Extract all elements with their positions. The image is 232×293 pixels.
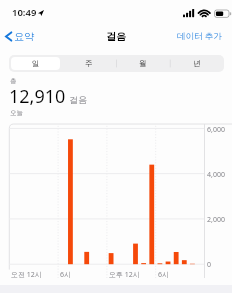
staticText: 4,000: [207, 170, 225, 180]
staticText: 오후 12시: [109, 270, 140, 280]
staticText: 오늘: [10, 109, 23, 117]
staticText: 걸음: [69, 94, 87, 105]
staticText: 2,000: [207, 215, 225, 225]
staticText: 0: [207, 260, 212, 270]
button[interactable]: 주: [62, 55, 116, 72]
staticText: 오전 12시: [11, 270, 42, 280]
staticText: 6,000: [207, 125, 225, 135]
staticText: 일: [32, 59, 40, 68]
staticText: 6시: [158, 270, 170, 280]
staticText: 10:49: [12, 6, 37, 19]
button[interactable]: 월: [116, 55, 170, 72]
staticText: 6시: [60, 270, 72, 280]
staticText: 총: [10, 77, 17, 85]
staticText: 요약: [14, 30, 34, 43]
button[interactable]: 요약: [0, 27, 40, 46]
button[interactable]: 데이터 추가: [171, 27, 232, 45]
button[interactable]: 년: [170, 55, 224, 72]
staticText: 년: [193, 59, 201, 68]
staticText: 걸음: [106, 30, 126, 43]
button[interactable]: 일: [9, 55, 62, 72]
staticText: 12,910: [9, 84, 66, 109]
staticText: 주: [85, 59, 93, 68]
staticText: 월: [139, 59, 147, 68]
